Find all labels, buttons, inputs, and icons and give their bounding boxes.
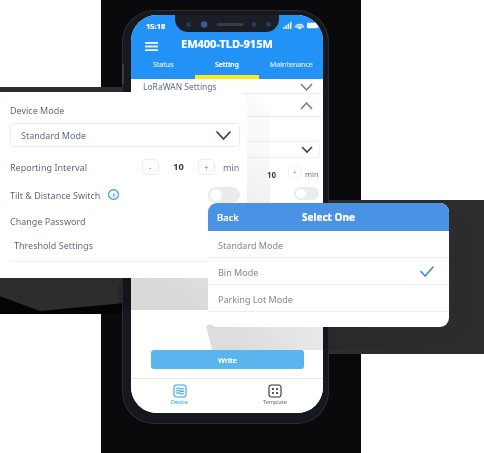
staticText: min — [305, 169, 319, 179]
staticText: + — [204, 162, 209, 173]
button[interactable]: Write — [151, 350, 304, 369]
staticText: Parking Lot Mode — [218, 293, 293, 305]
staticText: Bin Mode — [218, 266, 259, 278]
staticText: Standard Mode — [218, 239, 284, 251]
staticText: i — [113, 191, 115, 199]
staticText: 10 — [173, 160, 184, 173]
button[interactable]: Change Password — [10, 215, 86, 227]
staticText: Reporting Interval — [10, 161, 87, 173]
staticText: Maintenance — [270, 60, 313, 70]
button[interactable]: Template — [227, 378, 323, 413]
staticText: min — [223, 161, 240, 173]
button[interactable]: Info — [108, 189, 119, 200]
button[interactable]: Standard Mode — [208, 231, 449, 258]
staticText: Template — [263, 398, 287, 405]
staticText: Status — [153, 60, 174, 70]
button[interactable]: Bin Mode — [208, 258, 449, 285]
staticText: + — [293, 168, 297, 177]
button[interactable]: Threshold Settings — [14, 239, 93, 251]
staticText: 10 — [267, 169, 277, 180]
button[interactable]: LoRaWAN Settings — [131, 79, 323, 94]
staticText: Setting — [215, 60, 239, 70]
staticText: LoRaWAN Settings — [143, 81, 217, 93]
button[interactable] — [131, 94, 323, 117]
staticText: Device — [171, 398, 188, 405]
button[interactable]: Device — [131, 378, 227, 413]
staticText: EM400-TLD-915M — [181, 36, 273, 51]
button[interactable]: Parking Lot Mode — [208, 285, 449, 312]
button[interactable]: Decrease — [142, 159, 159, 175]
button[interactable]: Standard Mode — [10, 123, 240, 147]
staticText: Select One — [302, 210, 355, 224]
button[interactable]: Menu — [141, 38, 161, 54]
button[interactable]: Maintenance — [259, 59, 323, 79]
button[interactable]: Status — [131, 59, 195, 79]
staticText: 15:18 — [146, 21, 166, 31]
button[interactable]: Increase — [198, 159, 215, 175]
button[interactable]: Setting — [195, 59, 259, 79]
button[interactable]: Tilt and Distance Switch toggle — [208, 187, 240, 203]
staticText: - — [149, 162, 152, 173]
staticText: Device Mode — [10, 104, 65, 116]
staticText: Tilt & Distance Switch — [10, 189, 101, 201]
staticText: Standard Mode — [21, 129, 87, 141]
staticText: Write — [218, 355, 237, 365]
button[interactable]: Back — [217, 211, 239, 224]
